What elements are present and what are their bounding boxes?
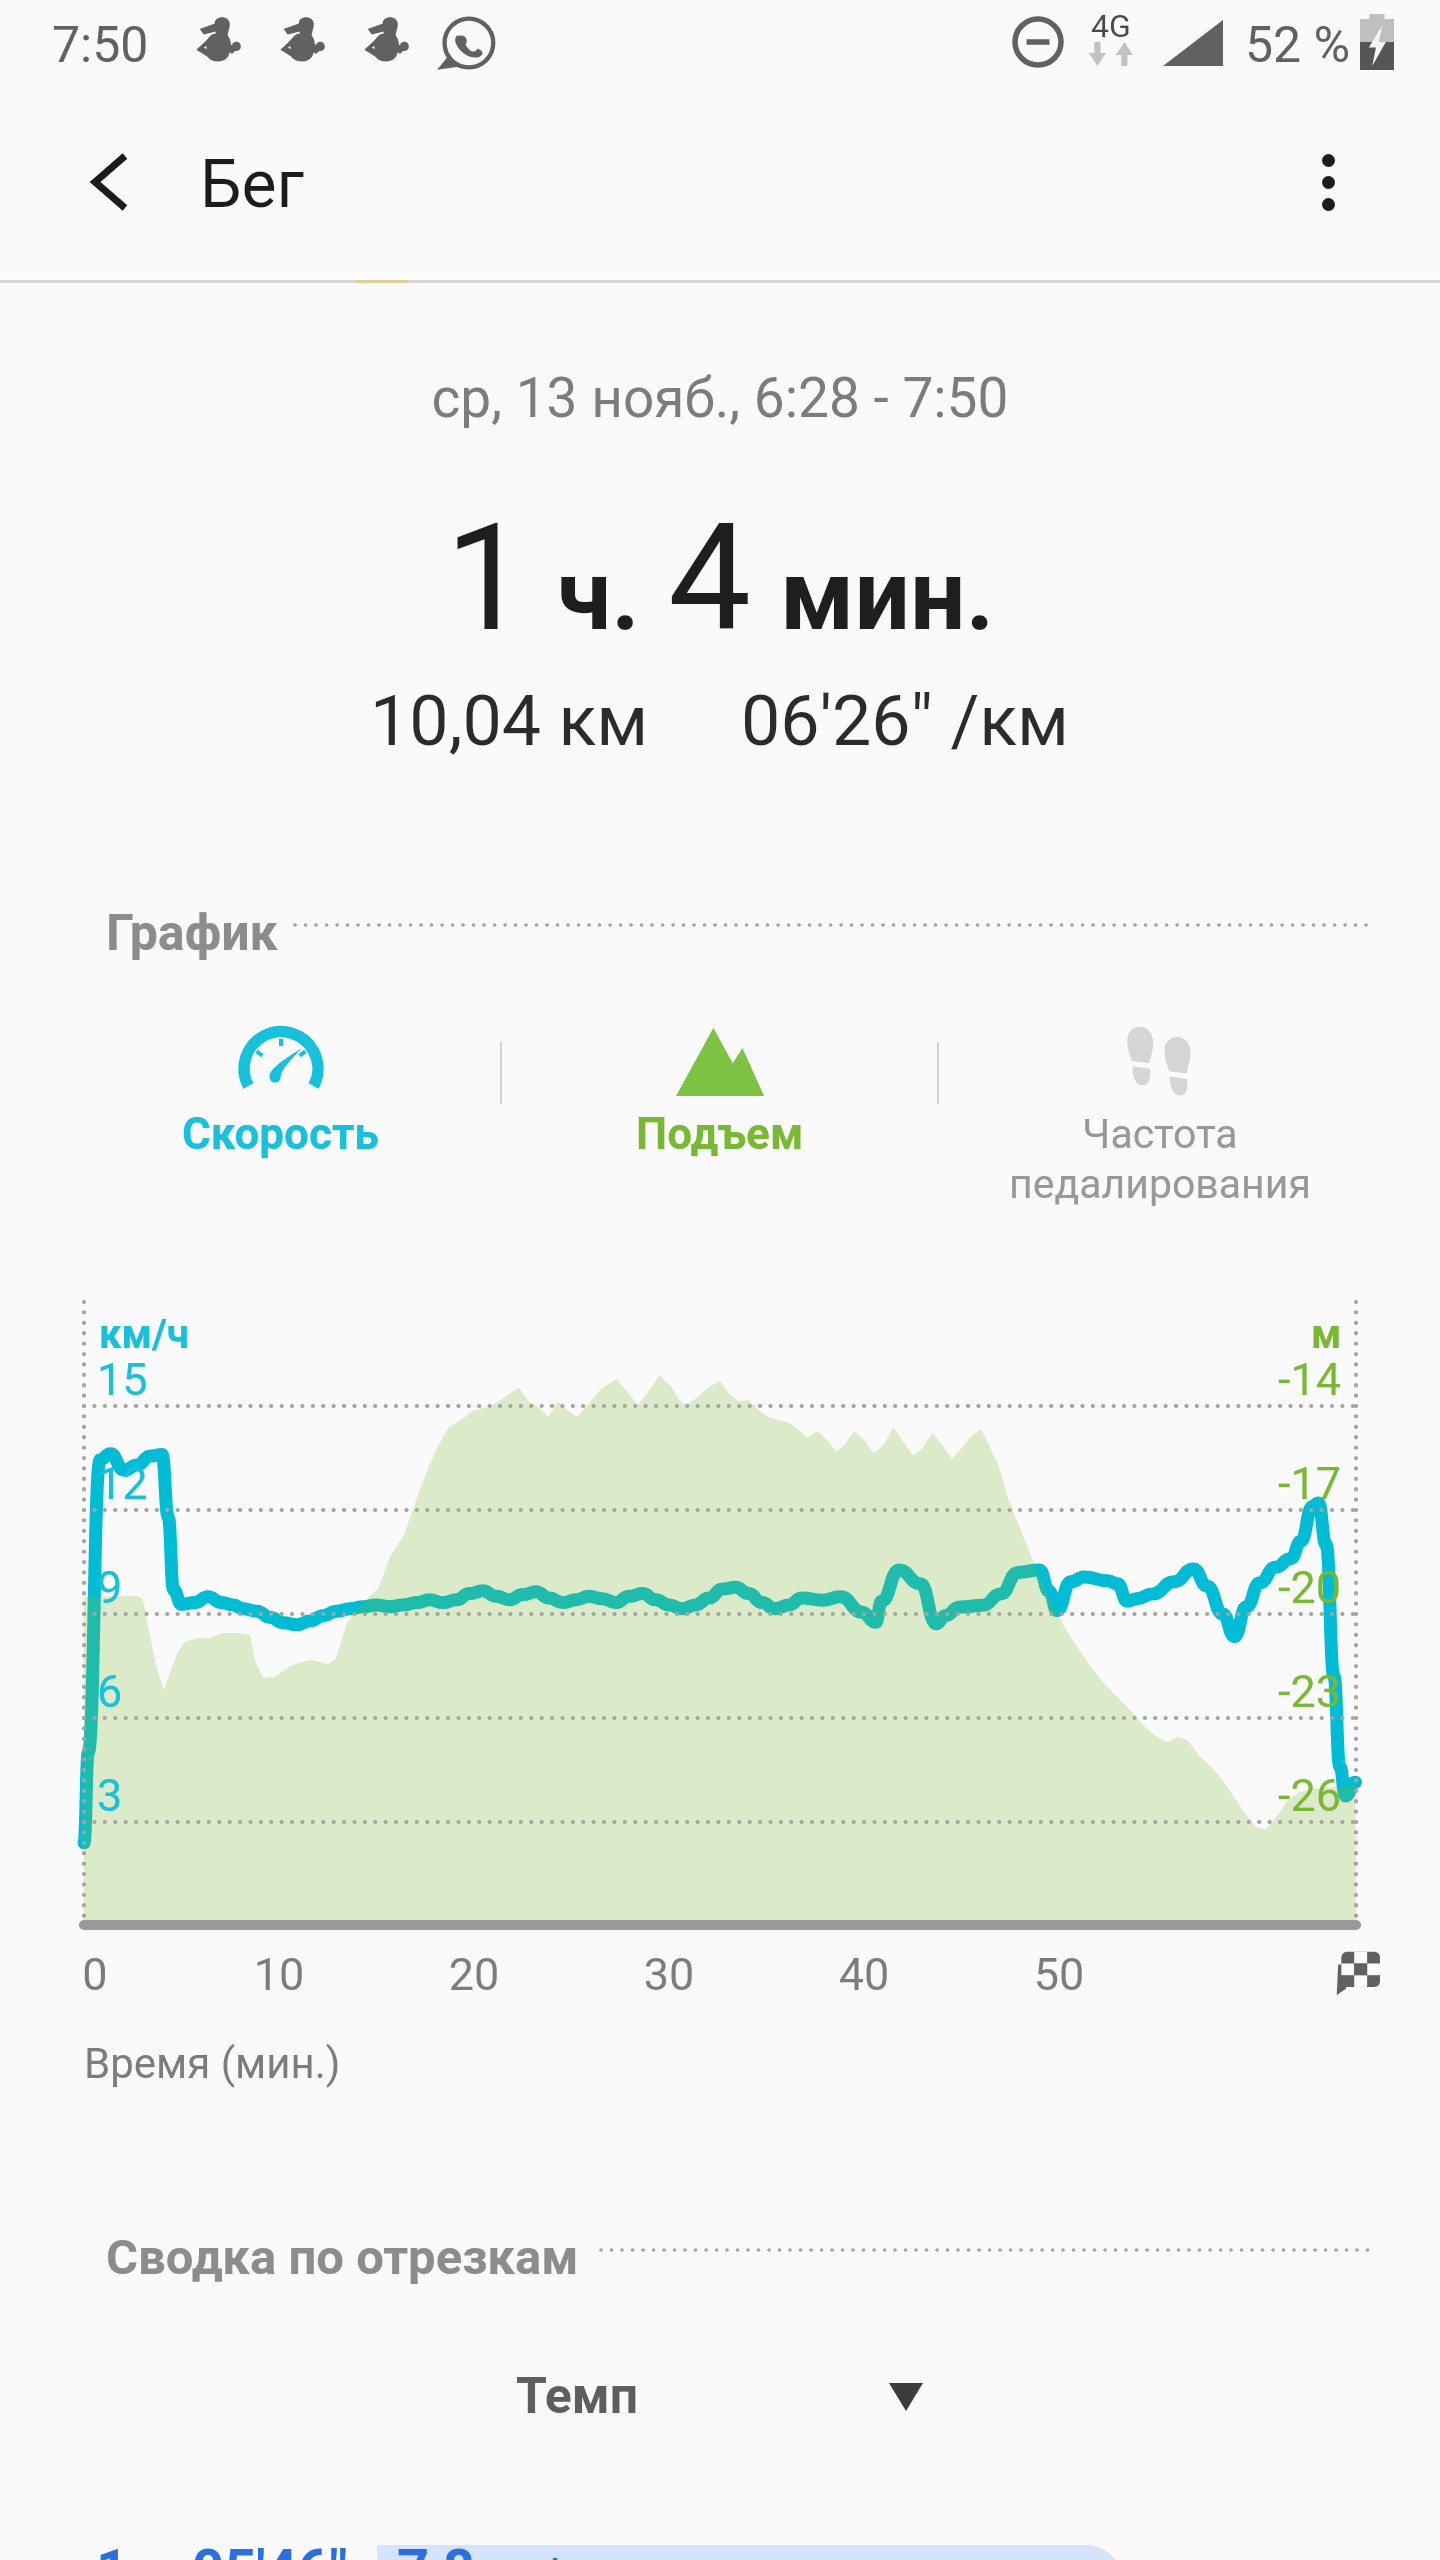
staticText: 1: [96, 2537, 129, 2560]
staticText: Частота педалирования: [960, 1110, 1360, 1208]
staticText: 10: [219, 1948, 339, 2001]
button[interactable]: Частота педалирования: [960, 1010, 1360, 1260]
staticText: 3: [97, 1769, 123, 1822]
staticText: 15: [97, 1353, 148, 1406]
staticText: 7,8: [397, 2537, 475, 2560]
staticText: 6: [97, 1665, 123, 1718]
button[interactable]: Подъем: [520, 1010, 920, 1220]
staticText: -14: [1278, 1353, 1342, 1406]
staticText: 52 %: [1245, 16, 1351, 75]
staticText: Сводка по отрезкам: [106, 2229, 579, 2286]
staticText: 30: [609, 1948, 729, 2001]
staticText: 06'26" /км: [741, 680, 1070, 762]
staticText: км/ч: [99, 1311, 190, 1358]
button[interactable]: Back: [45, 117, 175, 247]
staticText: 7:50: [52, 16, 149, 75]
staticText: -20: [1278, 1561, 1342, 1614]
button[interactable]: 1: [0, 2530, 1440, 2560]
staticText: м: [1311, 1311, 1342, 1358]
staticText: Бег: [200, 146, 305, 223]
staticText: 9: [97, 1561, 123, 1614]
staticText: 50: [999, 1948, 1119, 2001]
staticText: 12: [97, 1457, 148, 1510]
staticText: 40: [804, 1948, 924, 2001]
staticText: мин.: [780, 538, 995, 653]
staticText: 1: [445, 492, 529, 665]
staticText: -17: [1278, 1457, 1342, 1510]
staticText: ср, 13 нояб., 6:28 - 7:50: [0, 366, 1440, 430]
staticText: 10,04 км: [370, 680, 649, 762]
staticText: 0: [35, 1948, 155, 2001]
button[interactable]: Скорость: [80, 1010, 480, 1220]
staticText: 4: [668, 492, 752, 665]
staticText: ч.: [557, 538, 640, 653]
staticText: Подъем: [636, 1108, 804, 1160]
staticText: Темп: [516, 2367, 639, 2426]
staticText: 20: [414, 1948, 534, 2001]
staticText: км/ч: [487, 2549, 582, 2560]
staticText: 4G: [1091, 7, 1131, 45]
staticText: -26: [1278, 1769, 1342, 1822]
staticText: Скорость: [182, 1108, 379, 1160]
staticText: 05'46": [192, 2537, 348, 2560]
staticText: Время (мин.): [84, 2039, 341, 2088]
button[interactable]: More options: [1263, 117, 1393, 247]
staticText: -23: [1278, 1665, 1342, 1718]
staticText: График: [106, 904, 278, 963]
button[interactable]: Темп: [516, 2367, 923, 2426]
